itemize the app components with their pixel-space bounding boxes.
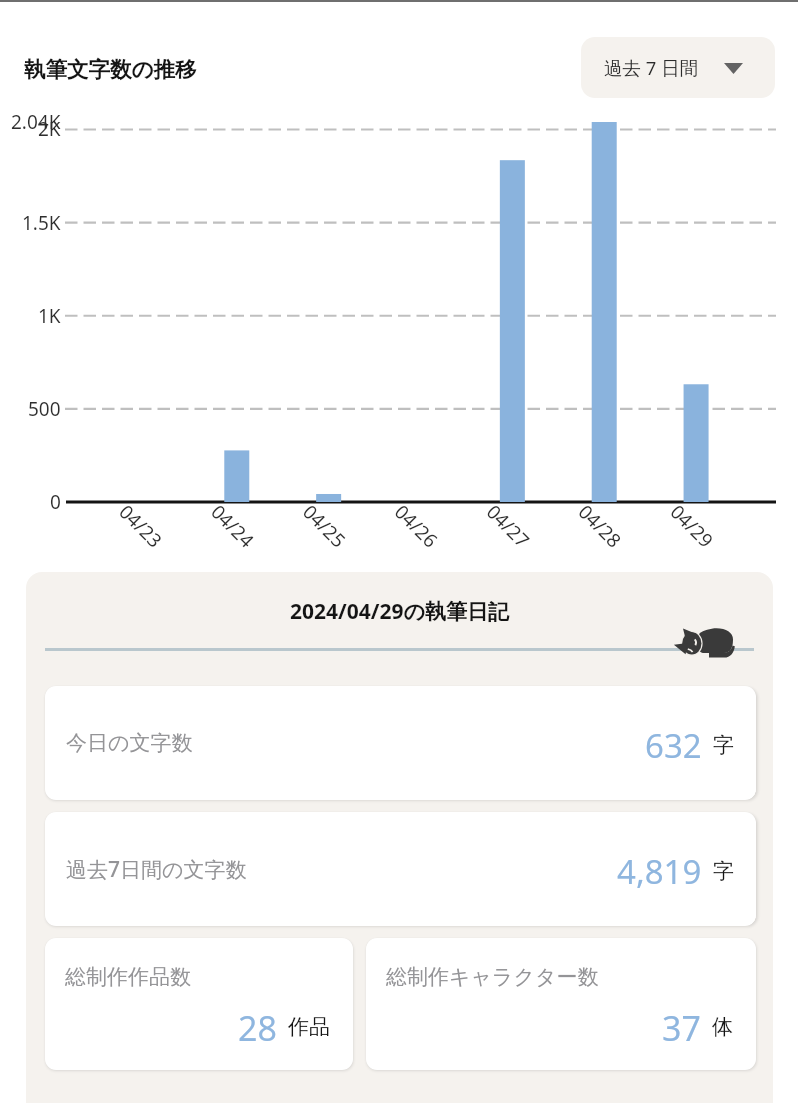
staticText: 総制作キャラクター数	[386, 964, 599, 990]
staticText: 体	[712, 1014, 733, 1040]
staticText: 総制作作品数	[65, 964, 191, 990]
staticText: 過去 7 日間	[604, 55, 699, 80]
staticText: 37	[662, 1005, 701, 1051]
staticText: 2024/04/29の執筆日記	[26, 597, 773, 626]
button[interactable]: 総制作作品数	[45, 938, 353, 1070]
button[interactable]: 総制作キャラクター数	[366, 938, 756, 1070]
button[interactable]: 過去 7 日間	[581, 37, 775, 98]
staticText: 632	[645, 723, 702, 768]
staticText: 過去7日間の文字数	[66, 855, 247, 884]
staticText: 4,819	[617, 849, 702, 894]
button[interactable]: 過去7日間の文字数	[45, 812, 756, 926]
staticText: 28	[238, 1005, 277, 1051]
button[interactable]: 今日の文字数	[45, 686, 756, 800]
staticText: 字	[713, 858, 734, 884]
staticText: 字	[713, 732, 734, 758]
staticText: 今日の文字数	[66, 730, 193, 756]
staticText: 執筆文字数の推移	[24, 56, 197, 83]
staticText: 作品	[288, 1014, 330, 1040]
